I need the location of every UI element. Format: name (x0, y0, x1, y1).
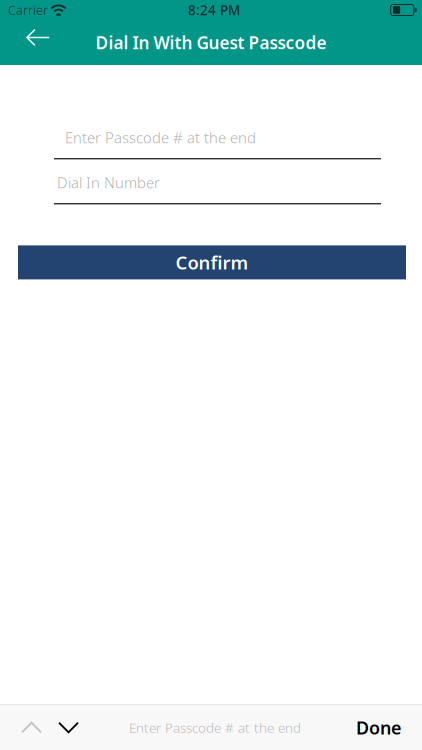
button[interactable]: Previous field (0, 710, 58, 745)
button[interactable]: Next field (58, 710, 79, 745)
staticText: 8:24 PM (188, 1, 240, 19)
button[interactable]: Back (0, 20, 64, 65)
staticText: Dial In Number (57, 173, 160, 192)
staticText: Done (356, 716, 401, 739)
staticText: Confirm (175, 250, 248, 275)
staticText: Carrier (8, 2, 48, 18)
button[interactable]: Confirm (18, 245, 406, 279)
button[interactable]: Done (338, 704, 422, 750)
staticText: Enter Passcode # at the end (65, 128, 256, 147)
staticText: Dial In With Guest Passcode (95, 31, 326, 54)
staticText: Enter Passcode # at the end (129, 719, 301, 736)
